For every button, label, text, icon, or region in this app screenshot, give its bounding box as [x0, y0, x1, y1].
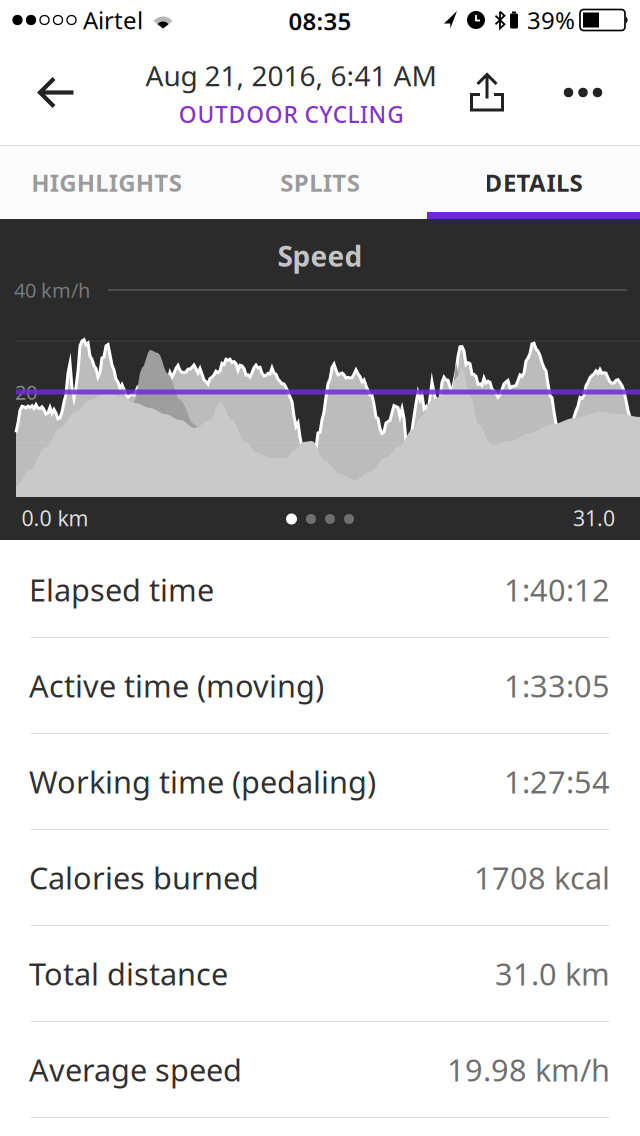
staticText: 1:27:54	[504, 761, 610, 802]
staticText: Aug 21, 2016, 6:41 AM	[145, 57, 436, 94]
staticText: 08:35	[288, 5, 351, 37]
button[interactable]: Share	[449, 55, 525, 129]
button[interactable]: Page 3	[325, 514, 335, 524]
staticText: DETAILS	[484, 167, 582, 198]
button[interactable]: SPLITS	[213, 146, 427, 219]
button[interactable]: HIGHLIGHTS	[0, 146, 213, 219]
button[interactable]: DETAILS	[427, 146, 640, 219]
staticText: 1708 kcal	[474, 857, 610, 898]
staticText: Active time (moving)	[29, 665, 324, 706]
staticText: Airtel	[83, 4, 143, 36]
staticText: Total distance	[29, 953, 228, 994]
staticText: 19.98 km/h	[447, 1049, 610, 1090]
staticText: 31.0 km	[495, 953, 610, 994]
button[interactable]: Page 1	[286, 513, 297, 524]
staticText: 20	[15, 379, 37, 405]
staticText: 1:40:12	[504, 569, 610, 610]
staticText: 39%	[527, 4, 575, 36]
button[interactable]: Page 4	[344, 514, 354, 524]
staticText: Working time (pedaling)	[29, 761, 376, 802]
button[interactable]: Back	[0, 55, 112, 129]
staticText: Elapsed time	[29, 569, 214, 610]
button[interactable]: Page 2	[306, 514, 316, 524]
staticText: 1:33:05	[504, 665, 610, 706]
staticText: 31.0	[573, 504, 615, 532]
staticText: 0.0 km	[21, 504, 88, 532]
staticText: Average speed	[29, 1049, 242, 1090]
button[interactable]: More	[545, 55, 621, 129]
staticText: HIGHLIGHTS	[31, 167, 182, 198]
staticText: Calories burned	[29, 857, 259, 898]
staticText: Speed	[277, 237, 362, 275]
staticText: SPLITS	[280, 167, 360, 198]
staticText: OUTDOOR CYCLING	[179, 99, 403, 129]
staticText: 40 km/h	[14, 277, 90, 303]
